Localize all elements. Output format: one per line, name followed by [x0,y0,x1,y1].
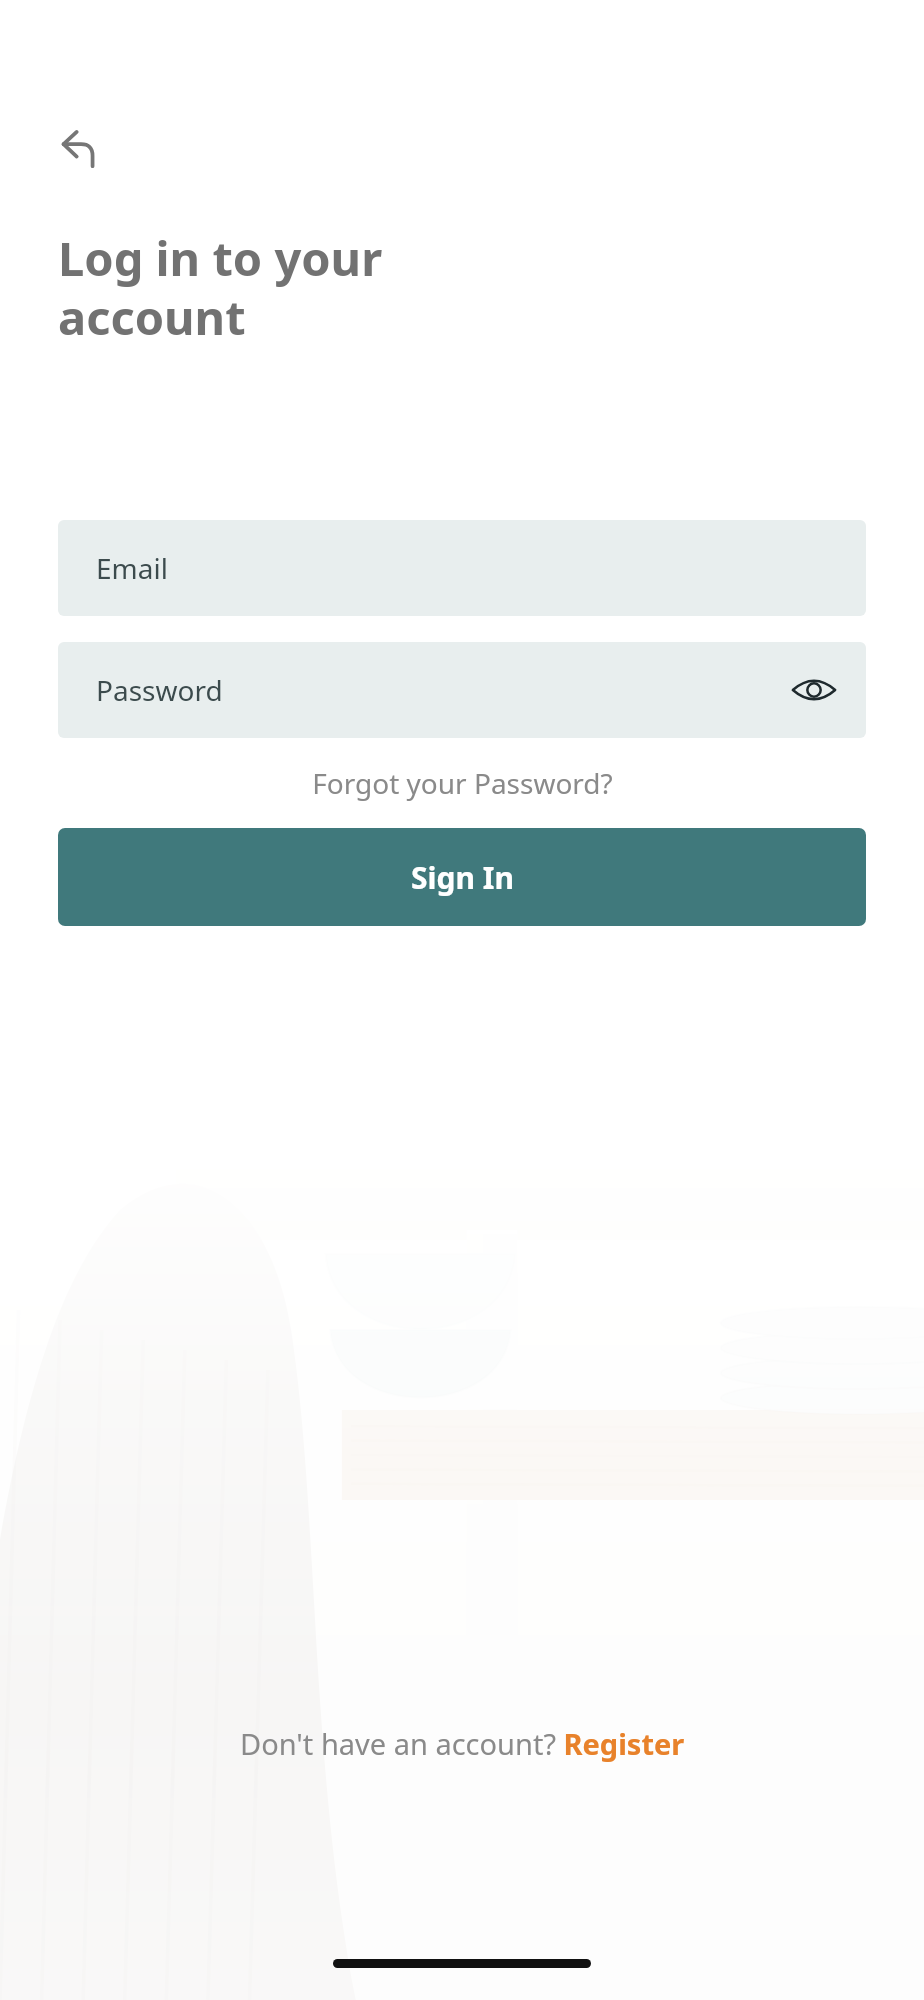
button[interactable]: Show password [784,660,844,720]
button[interactable]: Forgot your Password? [302,760,623,806]
button[interactable]: Password [58,642,866,738]
button[interactable]: Back [58,122,106,170]
staticText: Log in to your account [58,226,383,348]
staticText: Email [96,549,168,587]
staticText: Sign In [411,857,514,898]
button[interactable]: Email [58,520,866,616]
staticText: Password [96,671,223,709]
button[interactable]: Don't have an account? Register [228,1718,697,1769]
staticText: Don't have an account? Register [240,1724,685,1763]
button[interactable]: Sign In [58,828,866,926]
staticText: Forgot your Password? [312,764,613,802]
